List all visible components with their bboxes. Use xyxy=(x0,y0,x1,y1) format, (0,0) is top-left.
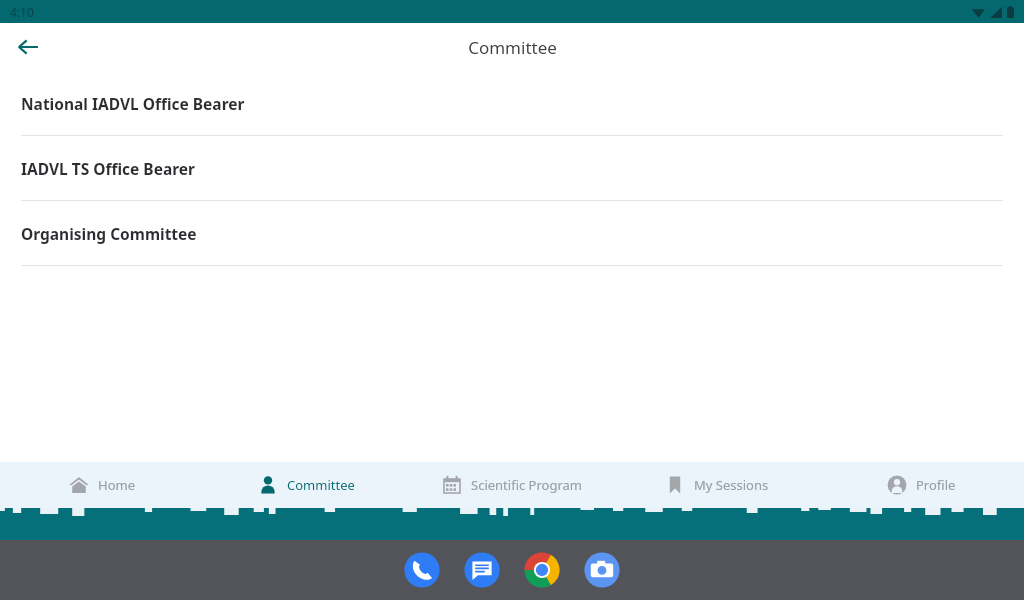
staticText: 4:10 xyxy=(10,4,34,20)
button[interactable]: Scientific Program xyxy=(409,462,614,508)
button[interactable]: National IADVL Office Bearer xyxy=(0,71,1024,136)
staticText: Committee xyxy=(468,36,557,59)
button[interactable]: Committee xyxy=(204,462,409,508)
staticText: Committee xyxy=(287,476,355,494)
button[interactable]: Messages xyxy=(462,550,502,590)
staticText: Organising Committee xyxy=(21,223,197,244)
button[interactable]: Organising Committee xyxy=(0,201,1024,266)
button[interactable]: Home xyxy=(0,462,204,508)
button[interactable]: My Sessions xyxy=(614,462,819,508)
button[interactable]: Back xyxy=(8,27,48,67)
button[interactable]: Phone xyxy=(402,550,442,590)
staticText: My Sessions xyxy=(694,476,769,494)
staticText: IADVL TS Office Bearer xyxy=(21,158,196,179)
button[interactable]: IADVL TS Office Bearer xyxy=(0,136,1024,201)
staticText: Profile xyxy=(916,476,956,494)
button[interactable]: Profile xyxy=(819,462,1024,508)
button[interactable]: Chrome xyxy=(522,550,562,590)
button[interactable]: Camera xyxy=(582,550,622,590)
staticText: Scientific Program xyxy=(471,476,582,494)
staticText: National IADVL Office Bearer xyxy=(21,93,245,114)
staticText: Home xyxy=(98,476,135,494)
